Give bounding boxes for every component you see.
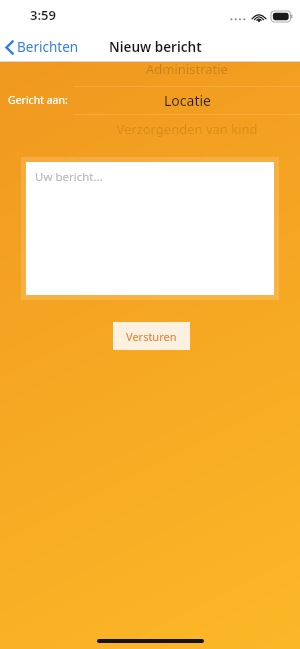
staticText: Nieuw bericht bbox=[109, 38, 202, 56]
staticText: Verzorgenden van kind bbox=[116, 120, 258, 138]
staticText: Versturen bbox=[126, 329, 177, 344]
button[interactable]: Berichten bbox=[0, 35, 85, 59]
button[interactable]: Versturen bbox=[113, 322, 190, 350]
staticText: Berichten bbox=[17, 38, 79, 56]
button[interactable]: Administratie bbox=[74, 62, 300, 138]
staticText: Administratie bbox=[146, 60, 228, 78]
staticText: Locatie bbox=[164, 91, 211, 110]
staticText: Gericht aan: bbox=[8, 93, 68, 107]
button[interactable]: Uw bericht... bbox=[26, 162, 274, 295]
staticText: 3:59 bbox=[30, 6, 56, 24]
staticText: Uw bericht... bbox=[35, 169, 103, 185]
